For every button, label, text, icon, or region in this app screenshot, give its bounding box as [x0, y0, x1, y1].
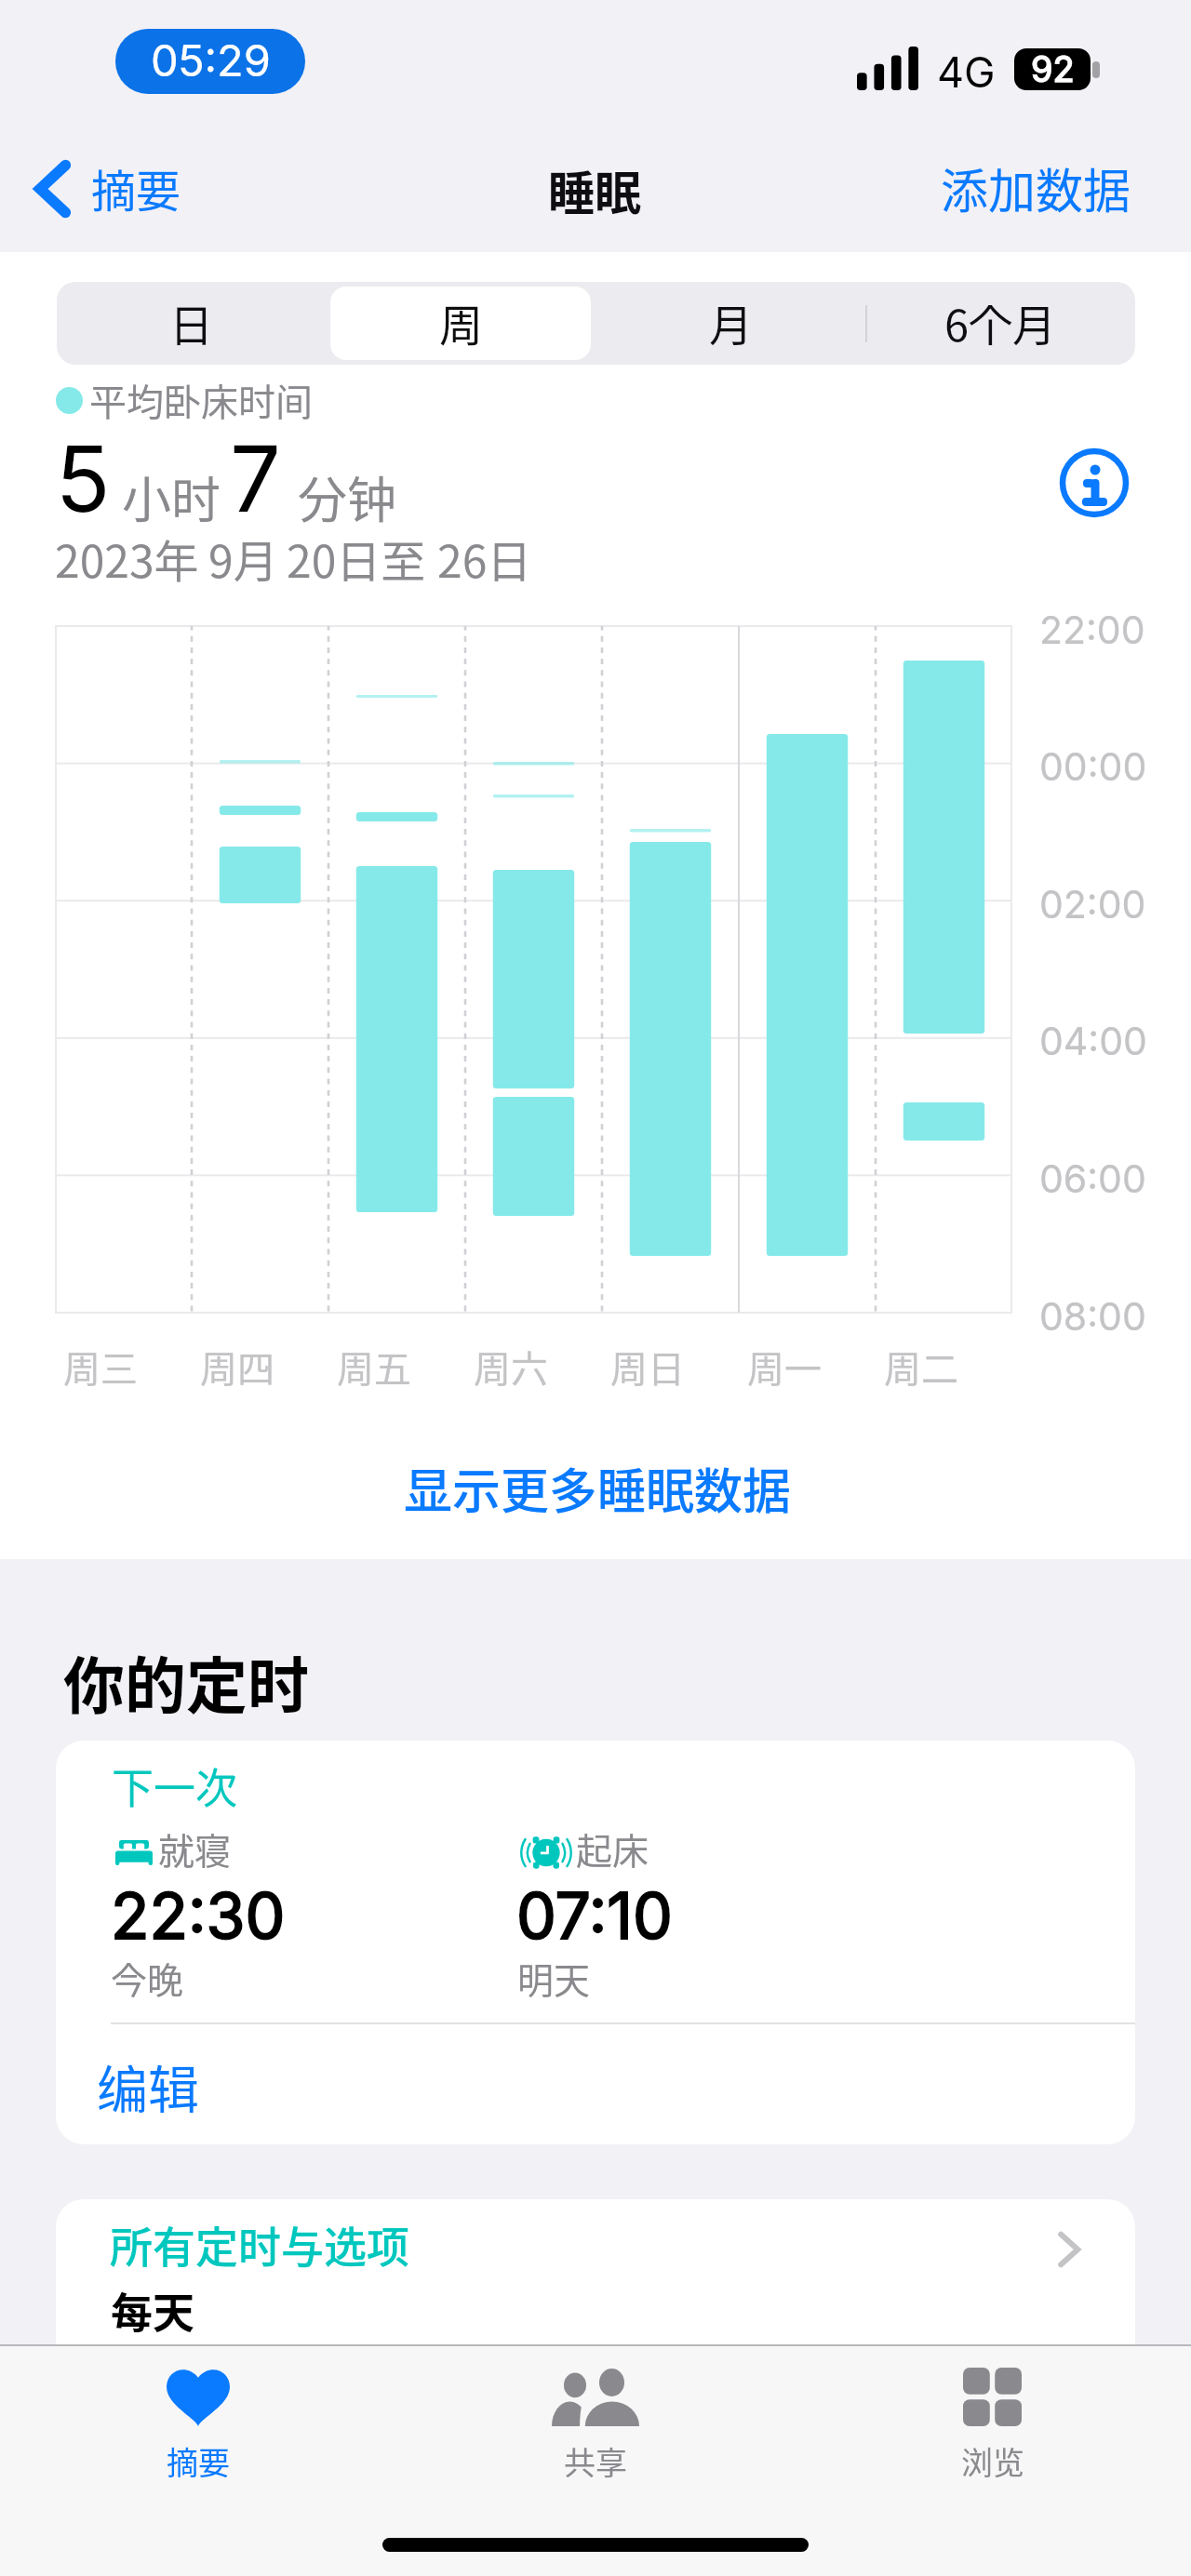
- staticText: 周三: [63, 1340, 138, 1394]
- staticText: 睡眠: [548, 156, 641, 223]
- staticText: 05:29: [151, 33, 271, 87]
- staticText: 共享: [564, 2438, 627, 2484]
- staticText: 浏览: [961, 2438, 1024, 2484]
- staticText: 周五: [337, 1340, 411, 1394]
- staticText: 7: [230, 424, 281, 533]
- staticText: 04:00: [1039, 1018, 1147, 1064]
- button[interactable]: 月: [595, 282, 865, 365]
- staticText: 6个月: [944, 290, 1057, 354]
- staticText: 周一: [747, 1340, 822, 1394]
- staticText: 日: [169, 290, 213, 354]
- button[interactable]: More information: [1057, 446, 1131, 520]
- staticText: 20日至: [287, 526, 426, 591]
- button[interactable]: 日: [57, 282, 326, 365]
- staticText: 4G: [937, 47, 996, 97]
- staticText: 每天: [111, 2280, 195, 2341]
- staticText: 周日: [610, 1340, 685, 1394]
- staticText: 周六: [474, 1340, 548, 1394]
- staticText: 9月: [208, 526, 278, 591]
- staticText: 所有定时与选项: [110, 2213, 409, 2276]
- staticText: 00:00: [1039, 743, 1147, 790]
- staticText: 今晚: [111, 1952, 184, 2004]
- staticText: 周: [439, 290, 483, 354]
- button[interactable]: 摘要: [0, 2346, 396, 2576]
- staticText: 26日: [437, 526, 532, 591]
- button[interactable]: 显示更多睡眠数据: [387, 1439, 812, 1535]
- staticText: 明天: [517, 1952, 591, 2004]
- staticText: 分钟: [298, 461, 396, 533]
- staticText: 06:00: [1039, 1155, 1146, 1202]
- button[interactable]: 摘要: [28, 156, 189, 221]
- button[interactable]: 所有定时与选项: [56, 2199, 1135, 2404]
- staticText: 02:00: [1039, 881, 1146, 928]
- staticText: 添加数据: [941, 153, 1131, 222]
- button[interactable]: 浏览: [794, 2346, 1191, 2576]
- staticText: 92: [1031, 48, 1075, 89]
- staticText: 你的定时: [63, 1636, 309, 1726]
- button[interactable]: 编辑: [56, 2024, 1135, 2144]
- button[interactable]: 周: [326, 282, 595, 365]
- staticText: 摘要: [167, 2438, 230, 2484]
- staticText: 显示更多睡眠数据: [404, 1453, 792, 1523]
- staticText: 5: [57, 424, 111, 533]
- staticText: 周二: [884, 1340, 958, 1394]
- staticText: 小时: [122, 461, 221, 533]
- staticText: 下一次: [112, 1755, 238, 1816]
- staticText: 07:10: [516, 1877, 673, 1954]
- button[interactable]: 添加数据: [935, 146, 1141, 230]
- staticText: 平均卧床时间: [89, 373, 313, 427]
- staticText: 月: [709, 290, 753, 354]
- staticText: 22:00: [1039, 607, 1145, 653]
- staticText: 起床: [576, 1822, 649, 1875]
- staticText: 摘要: [91, 155, 181, 220]
- button[interactable]: 6个月: [865, 282, 1135, 365]
- staticText: 2023年: [55, 526, 199, 591]
- staticText: 周四: [200, 1340, 274, 1394]
- staticText: 编辑: [97, 2049, 200, 2123]
- button[interactable]: 共享: [396, 2346, 794, 2576]
- staticText: 22:30: [111, 1877, 286, 1954]
- staticText: 08:00: [1039, 1293, 1146, 1340]
- staticText: 就寝: [158, 1822, 232, 1875]
